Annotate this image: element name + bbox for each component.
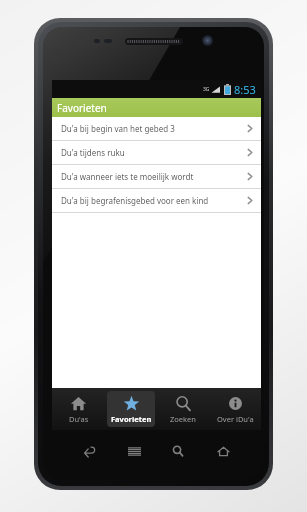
staticText: Du'as xyxy=(69,414,89,423)
button[interactable]: Du'a bij begrafenisgebed voor een kind xyxy=(52,189,261,212)
button[interactable]: Back xyxy=(78,440,100,462)
button[interactable]: Over iDu'a xyxy=(211,391,259,427)
staticText: 3G xyxy=(203,86,210,93)
button[interactable]: Du'as xyxy=(54,391,103,427)
button[interactable]: Du'a wanneer iets te moeilijk wordt xyxy=(52,165,261,188)
button[interactable]: Du'a bij begin van het gebed 3 xyxy=(52,117,261,140)
staticText: Zoeken xyxy=(170,414,196,423)
button[interactable]: Search xyxy=(167,440,189,462)
button[interactable]: Menu xyxy=(123,440,145,462)
staticText: Du'a wanneer iets te moeilijk wordt xyxy=(61,171,247,182)
staticText: Du'a tijdens ruku xyxy=(61,147,247,158)
staticText: Favorieten xyxy=(111,414,152,423)
staticText: 8:53 xyxy=(234,82,256,97)
staticText: Du'a bij begrafenisgebed voor een kind xyxy=(61,195,247,206)
button[interactable]: Home xyxy=(212,440,234,462)
button[interactable]: Favorieten xyxy=(107,391,155,427)
staticText: Over iDu'a xyxy=(217,414,254,423)
staticText: Du'a bij begin van het gebed 3 xyxy=(61,123,247,134)
button[interactable]: Du'a tijdens ruku xyxy=(52,141,261,164)
staticText: Favorieten xyxy=(57,101,107,115)
button[interactable]: Zoeken xyxy=(159,391,207,427)
